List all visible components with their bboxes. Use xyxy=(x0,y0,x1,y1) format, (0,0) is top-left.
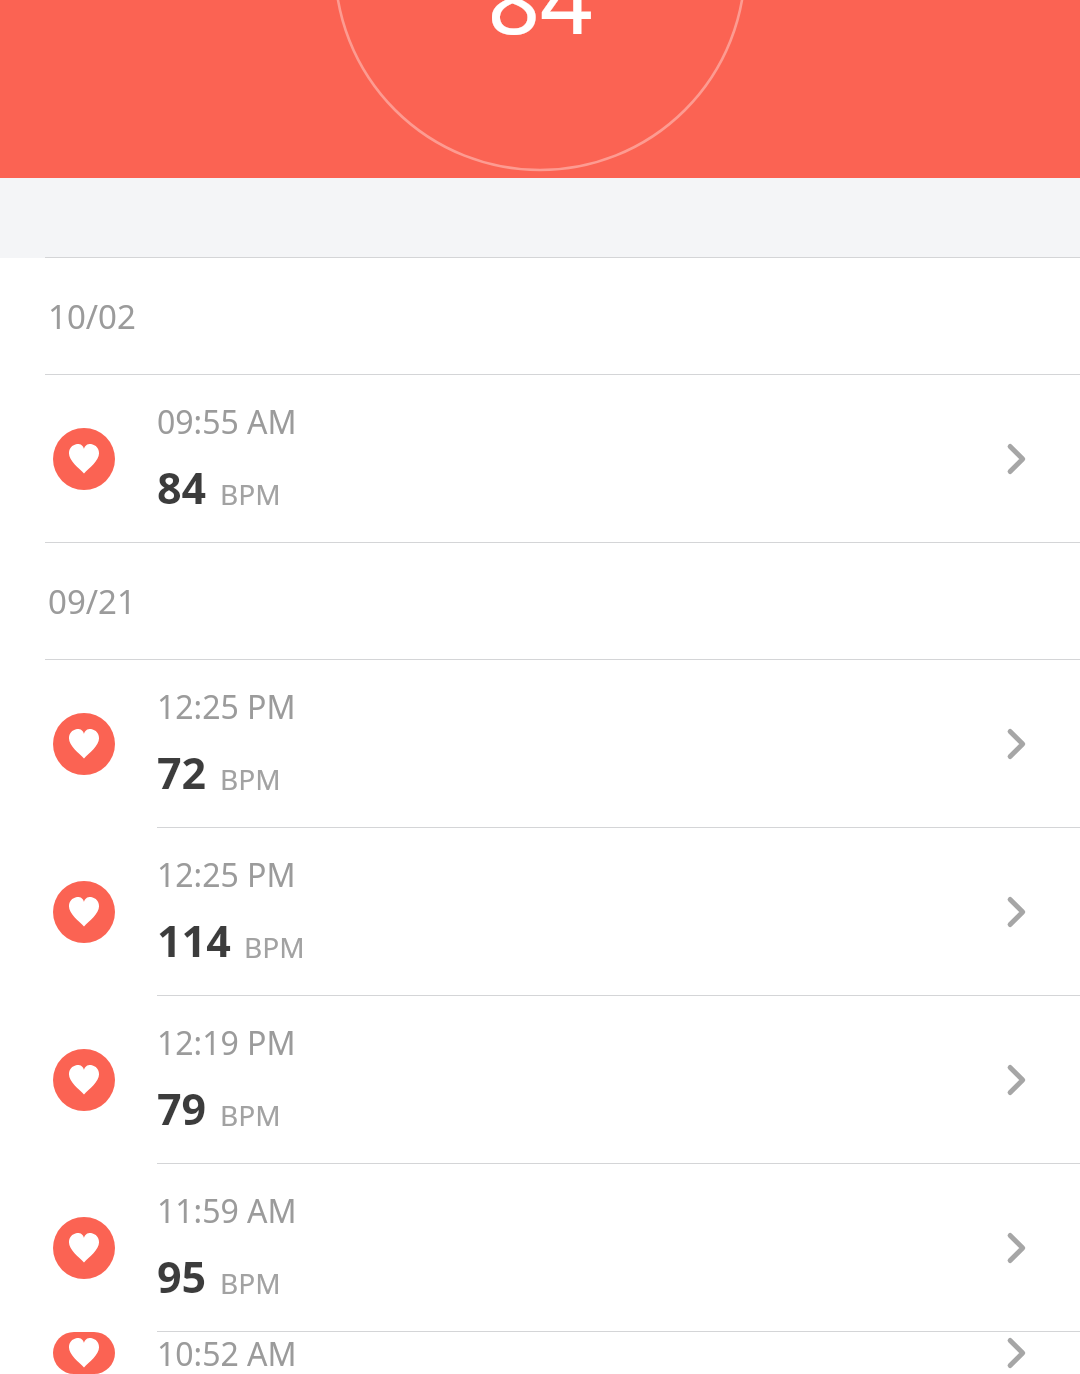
button[interactable]: 09:55 AM xyxy=(0,375,1080,542)
staticText: 10/02 xyxy=(48,294,136,339)
staticText: 114 xyxy=(157,911,231,970)
other: View reading details xyxy=(992,888,1040,936)
staticText: BPM xyxy=(220,1096,281,1134)
staticText: BPM xyxy=(220,1264,281,1302)
staticText: BPM xyxy=(244,928,305,966)
staticText: 72 xyxy=(157,743,207,802)
other: View reading details xyxy=(992,1332,1040,1374)
staticText: 12:25 PM xyxy=(157,685,296,729)
other: View reading details xyxy=(992,1224,1040,1272)
button[interactable]: 12:25 PM xyxy=(0,828,1080,995)
staticText: 79 xyxy=(157,1079,207,1138)
other: View reading details xyxy=(992,435,1040,483)
button[interactable]: 12:25 PM xyxy=(0,660,1080,827)
staticText: 12:25 PM xyxy=(157,853,296,897)
button[interactable]: 12:19 PM xyxy=(0,996,1080,1163)
button[interactable]: 10:52 AM xyxy=(0,1332,1080,1374)
staticText: 09/21 xyxy=(48,579,136,624)
staticText: 09:55 AM xyxy=(157,400,297,444)
staticText: 84 xyxy=(0,0,1080,61)
other: View reading details xyxy=(992,720,1040,768)
staticText: 12:19 PM xyxy=(157,1021,296,1065)
staticText: 95 xyxy=(157,1247,207,1306)
staticText: 10:52 AM xyxy=(157,1332,297,1374)
staticText: BPM xyxy=(220,760,281,798)
staticText: 11:59 AM xyxy=(157,1189,297,1233)
other: View reading details xyxy=(992,1056,1040,1104)
button[interactable]: 11:59 AM xyxy=(0,1164,1080,1331)
staticText: 84 xyxy=(157,458,207,517)
staticText: BPM xyxy=(220,475,281,513)
